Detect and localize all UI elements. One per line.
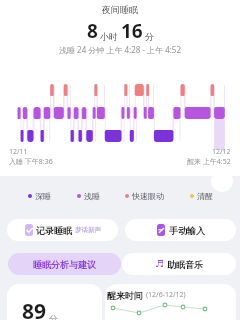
staticText: 小时 xyxy=(100,31,118,42)
staticText: 醒来 上午4:52 xyxy=(187,157,231,167)
button[interactable]: 快速眼动 xyxy=(125,191,164,201)
staticText: 手动输入 xyxy=(169,225,205,236)
staticText: 12/11 xyxy=(9,147,28,157)
staticText: 助眠音乐 xyxy=(167,259,203,270)
staticText: 浅睡 24 分钟 上午 4:28 - 上午 4:52 xyxy=(0,44,240,55)
staticText: 分 xyxy=(145,31,154,42)
staticText: 醒来时间 xyxy=(107,290,143,301)
button[interactable]: 浅睡 xyxy=(77,191,100,201)
staticText: 清醒 xyxy=(197,191,213,201)
button[interactable]: 记录睡眠 xyxy=(7,219,118,241)
staticText: 16 xyxy=(121,18,143,44)
staticText: 浅睡 xyxy=(84,191,100,201)
button[interactable]: 睡眠分析与建议 xyxy=(8,253,121,275)
staticText: 梦话新声 xyxy=(75,226,101,234)
staticText: (12/6-12/12) xyxy=(146,290,186,300)
staticText: 89 xyxy=(22,297,47,320)
button[interactable]: 深睡 xyxy=(28,191,51,201)
button[interactable]: ♬ xyxy=(122,253,236,275)
button[interactable]: 89 xyxy=(7,284,102,320)
staticText: 入睡 下午8:36 xyxy=(9,157,53,167)
staticText: ♬ xyxy=(155,258,164,270)
button[interactable]: More xyxy=(211,170,233,192)
button[interactable]: 清醒 xyxy=(190,191,213,201)
staticText: 分 xyxy=(49,313,58,320)
staticText: 8 xyxy=(87,18,98,44)
staticText: 快速眼动 xyxy=(132,191,164,201)
button[interactable]: 手动输入 xyxy=(125,219,236,241)
button[interactable]: 醒来时间 xyxy=(105,284,236,320)
staticText: 记录睡眠 xyxy=(36,225,72,236)
staticText: 12/12 xyxy=(212,147,231,157)
staticText: 深睡 xyxy=(35,191,51,201)
staticText: 睡眠分析与建议 xyxy=(33,259,96,270)
staticText: 夜间睡眠 xyxy=(0,4,240,15)
